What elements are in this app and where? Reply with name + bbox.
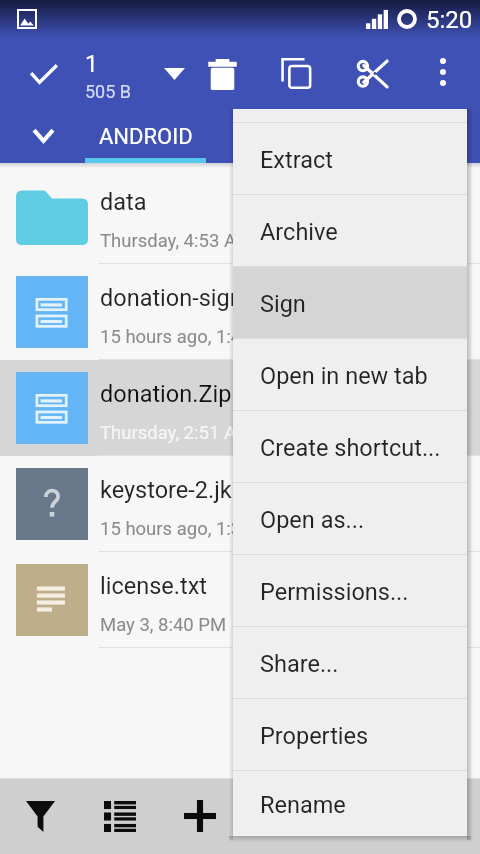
staticText: Thursday, 2:51 AM [100, 422, 253, 444]
button[interactable]: donation-signed.apk [0, 264, 480, 360]
button[interactable]: Selection options [152, 52, 196, 96]
button[interactable]: List view [90, 786, 150, 846]
staticText: 505 B [85, 81, 132, 102]
button[interactable]: donation.Zip [0, 360, 480, 456]
button[interactable]: Expand tabs [19, 108, 67, 156]
button[interactable]: Filter [10, 786, 70, 846]
button[interactable]: Permissions... [233, 554, 467, 626]
button[interactable]: data [0, 168, 480, 264]
staticText: donation-signed.apk [100, 284, 313, 312]
button[interactable]: Add [170, 786, 230, 846]
staticText: 15 hours ago, 1:36 PM [100, 518, 285, 540]
button[interactable]: More options [419, 48, 467, 96]
staticText: ANDROID [99, 124, 193, 150]
staticText: Extract [260, 146, 333, 174]
button[interactable]: Open in new tab [233, 338, 467, 410]
button[interactable]: Open as... [233, 482, 467, 554]
staticText: keystore-2.jks [100, 476, 244, 504]
button[interactable]: Copy [272, 49, 320, 97]
staticText: Permissions... [260, 578, 409, 606]
button[interactable]: Create shortcut... [233, 410, 467, 482]
staticText: Properties [260, 722, 369, 750]
button[interactable]: keystore-2.jks [0, 456, 480, 552]
staticText: Open as... [260, 506, 365, 534]
button[interactable]: ANDROID [85, 100, 206, 163]
staticText: 5:20 [426, 6, 473, 34]
button[interactable]: Rename [233, 770, 467, 836]
staticText: Rename [260, 791, 346, 819]
button[interactable]: Select all [16, 46, 72, 102]
staticText: 1 [85, 51, 98, 78]
staticText: Open in new tab [260, 362, 428, 390]
staticText: Share... [260, 650, 339, 678]
button[interactable]: Share... [233, 626, 467, 698]
staticText: Archive [260, 218, 338, 246]
staticText: Sign [260, 290, 306, 318]
staticText: license.txt [100, 572, 207, 600]
button[interactable]: Properties [233, 698, 467, 770]
staticText: Create shortcut... [260, 434, 441, 462]
button[interactable]: license.txt [0, 552, 480, 648]
button[interactable]: Cut [348, 49, 396, 97]
button[interactable]: Delete [198, 50, 246, 98]
staticText: data [100, 188, 147, 216]
staticText: donation.Zip [100, 380, 232, 408]
staticText: May 3, 8:40 PM [100, 614, 227, 636]
staticText: 15 hours ago, 1:43 PM [100, 326, 285, 348]
button[interactable]: Sign [233, 266, 467, 338]
button[interactable]: Archive [233, 194, 467, 266]
button[interactable]: Extract [233, 122, 467, 194]
staticText: Thursday, 4:53 AM [100, 230, 253, 252]
